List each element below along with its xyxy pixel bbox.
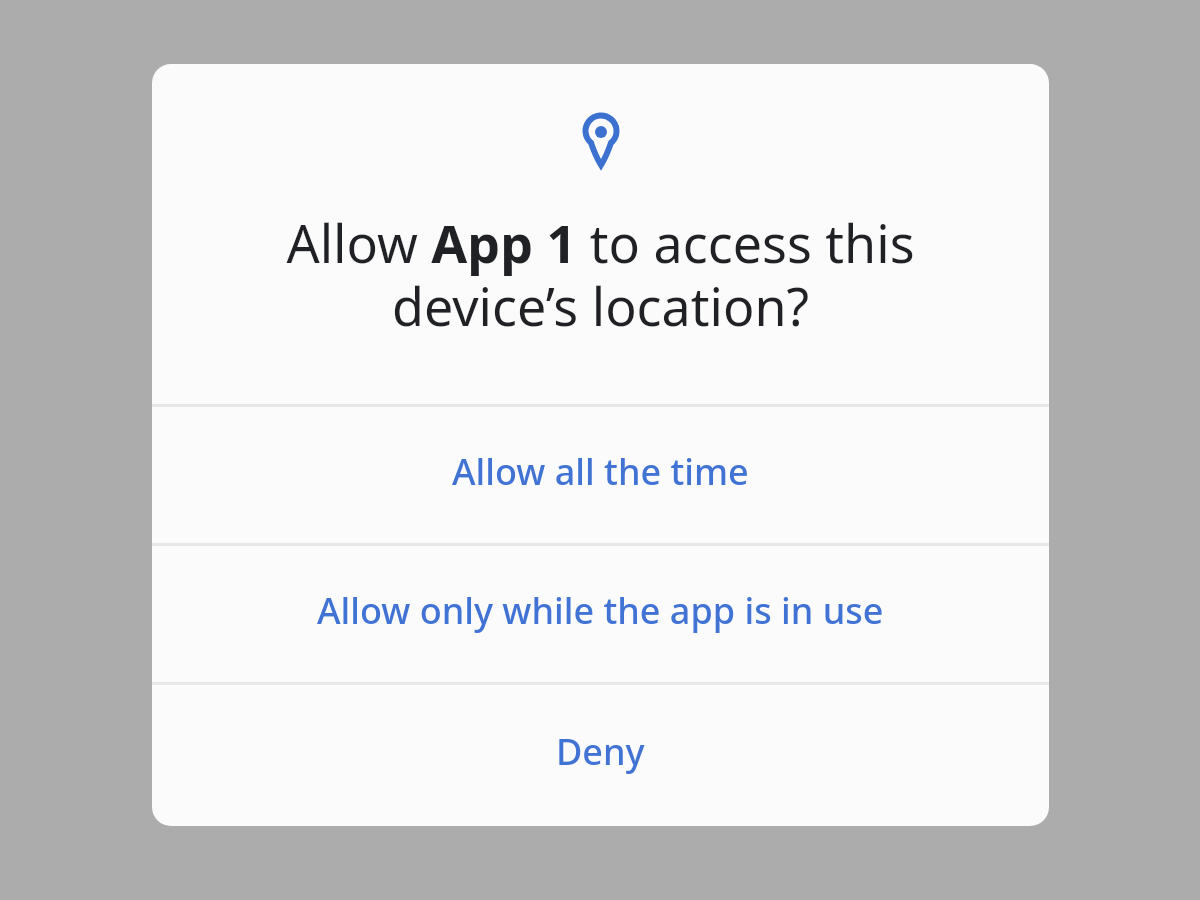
button[interactable]: Deny (152, 685, 1049, 826)
staticText: Deny (556, 727, 645, 776)
staticText: Allow only while the app is in use (317, 586, 884, 635)
staticText: Allow all the time (452, 447, 749, 496)
button[interactable]: Allow all the time (152, 407, 1049, 543)
staticText: Allow App 1 to access this device’s loca… (152, 207, 1049, 341)
button[interactable]: Allow only while the app is in use (152, 546, 1049, 682)
